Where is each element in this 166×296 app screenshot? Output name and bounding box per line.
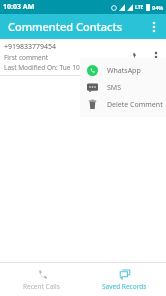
staticText: SMS [107, 83, 122, 93]
staticText: LTE [135, 4, 144, 11]
button[interactable]: Recent Calls [0, 263, 83, 296]
staticText: Last Modified On: Tue 10:02 AM 22-12-20 [4, 63, 126, 72]
button[interactable]: Call [126, 47, 146, 67]
button[interactable]: WhatsApp [80, 62, 166, 79]
staticText: Commented Contacts [8, 19, 123, 34]
staticText: +919833779454 [4, 42, 57, 52]
button[interactable]: Saved Records [83, 263, 166, 296]
button[interactable]: Delete Comment [80, 96, 166, 113]
staticText: Delete Comment [107, 100, 163, 110]
staticText: First comment [4, 53, 49, 62]
staticText: Recent Calls [23, 282, 60, 291]
staticText: WhatsApp [107, 66, 141, 76]
button[interactable]: More options [146, 47, 166, 67]
staticText: Saved Records [102, 282, 147, 291]
button[interactable]: +919833779454 [0, 39, 166, 76]
staticText: 94% [152, 4, 164, 11]
button[interactable]: SMS [80, 79, 166, 96]
button[interactable]: More options [142, 15, 166, 39]
staticText: 10:03 AM [3, 2, 35, 12]
